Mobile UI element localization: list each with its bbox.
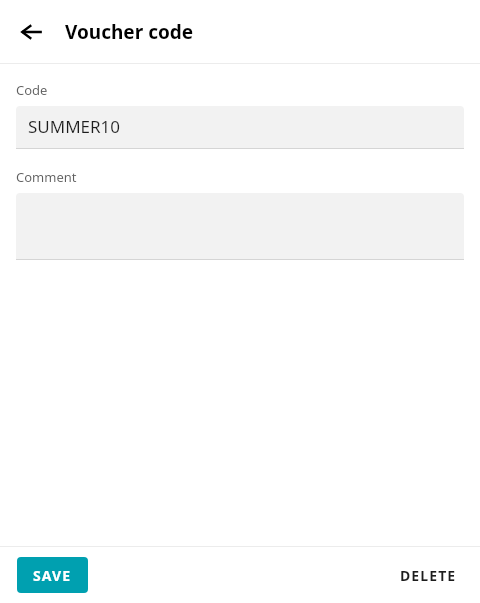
staticText: DELETE (400, 566, 457, 585)
button[interactable]: SUMMER10 (16, 106, 464, 149)
staticText: Code (16, 81, 48, 99)
staticText: Voucher code (65, 19, 194, 45)
button[interactable]: DELETE (394, 557, 463, 593)
button[interactable] (16, 193, 464, 260)
staticText: Comment (16, 168, 77, 186)
button[interactable]: Back (10, 10, 54, 54)
button[interactable]: SAVE (17, 557, 88, 593)
staticText: SAVE (33, 566, 72, 585)
staticText: SUMMER10 (28, 115, 121, 138)
